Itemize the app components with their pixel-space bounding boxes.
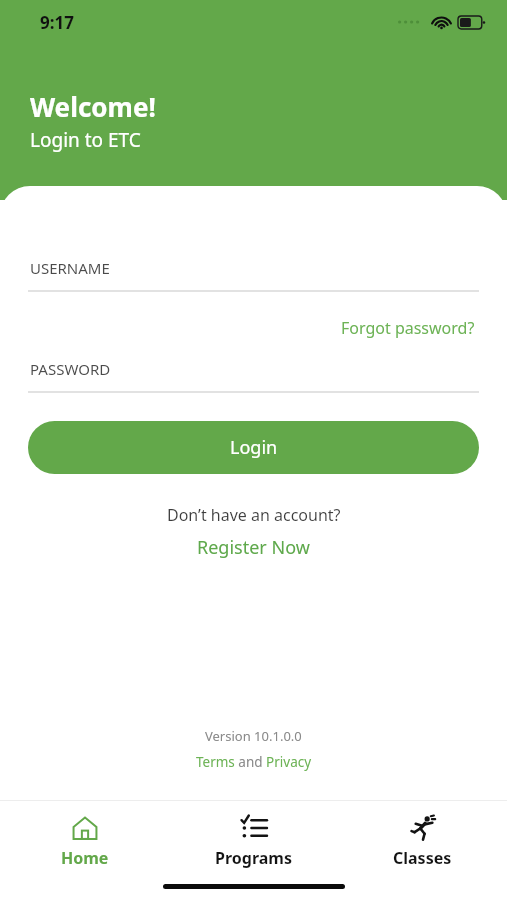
other: Programs (241, 815, 267, 841)
staticText: Terms and Privacy (196, 753, 312, 771)
button[interactable]: Forgot password? (337, 313, 479, 343)
other: Classes (410, 815, 436, 841)
staticText: PASSWORD (30, 359, 111, 379)
staticText: Register Now (197, 535, 310, 560)
button[interactable]: Terms and Privacy (190, 752, 318, 772)
button[interactable]: Register Now (191, 533, 316, 562)
button[interactable]: USERNAME (28, 258, 479, 292)
staticText: Login (230, 435, 278, 460)
staticText: Home (61, 847, 109, 869)
other: Home (72, 815, 98, 841)
staticText: Welcome! (30, 89, 156, 124)
staticText: 9:17 (40, 11, 74, 34)
button[interactable]: PASSWORD (28, 359, 479, 393)
staticText: Forgot password? (341, 317, 475, 339)
staticText: Programs (215, 847, 292, 869)
staticText: Classes (393, 847, 452, 869)
button[interactable]: Home (0, 801, 169, 900)
staticText: Don’t have an account? (167, 504, 341, 526)
staticText: Login to ETC (30, 127, 141, 153)
button[interactable]: Classes (338, 801, 507, 900)
button[interactable]: Login (28, 421, 479, 474)
button[interactable]: Programs (169, 801, 338, 900)
staticText: USERNAME (30, 258, 110, 278)
staticText: Version 10.1.0.0 (205, 727, 302, 745)
